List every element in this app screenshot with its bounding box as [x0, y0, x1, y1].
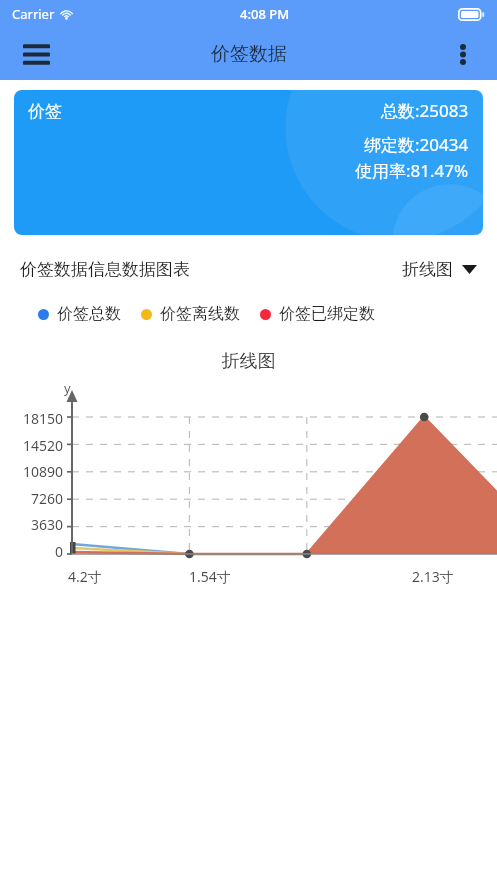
staticText: 总数:25083 — [381, 99, 469, 122]
staticText: 0 — [55, 542, 64, 561]
staticText: 使用率:81.47% — [355, 159, 469, 182]
button[interactable]: Menu — [14, 32, 58, 76]
staticText: 价签 — [28, 101, 62, 122]
button[interactable]: 折线图 — [398, 253, 481, 286]
staticText: 18150 — [23, 409, 64, 428]
button[interactable]: 价签已绑定数 — [260, 304, 375, 324]
staticText: 10890 — [23, 462, 64, 481]
staticText: 价签数据 — [211, 42, 287, 66]
staticText: 1.54寸 — [189, 567, 231, 586]
staticText: 绑定数:20434 — [364, 133, 469, 156]
staticText: 价签数据信息数据图表 — [20, 259, 190, 280]
staticText: Carrier — [12, 5, 55, 23]
staticText: 7260 — [31, 489, 64, 508]
staticText: 4.2寸 — [68, 567, 102, 586]
button[interactable]: 价签离线数 — [141, 304, 240, 324]
staticText: 价签总数 — [57, 304, 121, 324]
staticText: 价签离线数 — [160, 304, 240, 324]
staticText: 价签已绑定数 — [279, 304, 375, 324]
staticText: 3630 — [31, 515, 64, 534]
button[interactable]: 价签 — [14, 90, 483, 235]
staticText: 4:08 PM — [240, 5, 290, 23]
staticText: 折线图 — [0, 350, 497, 373]
staticText: y — [64, 379, 71, 397]
staticText: 折线图 — [402, 259, 453, 280]
button[interactable]: More options — [443, 34, 483, 74]
button[interactable]: 价签总数 — [38, 304, 121, 324]
staticText: 14520 — [23, 436, 64, 455]
staticText: 2.13寸 — [412, 567, 454, 586]
